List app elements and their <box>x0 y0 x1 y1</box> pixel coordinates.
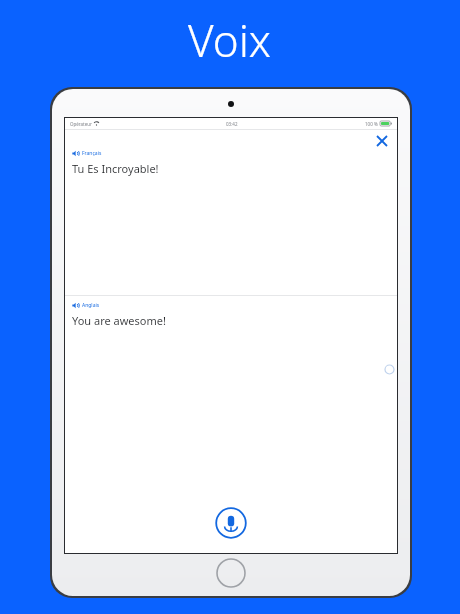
staticText: 03:42 <box>226 121 238 127</box>
staticText: Anglais <box>82 302 100 309</box>
staticText: Opérateur <box>70 121 92 127</box>
staticText: Voix <box>188 10 272 70</box>
button[interactable]: Close <box>65 130 397 295</box>
button[interactable]: Microphone <box>215 507 247 539</box>
button[interactable]: Home <box>216 558 246 588</box>
button[interactable]: Anglais <box>65 296 397 553</box>
staticText: You are awesome! <box>72 313 166 328</box>
staticText: Tu Es Incroyable! <box>72 161 159 176</box>
staticText: 100 % <box>365 121 378 127</box>
button[interactable]: Close <box>373 132 391 150</box>
staticText: Français <box>82 150 102 157</box>
button[interactable]: More <box>385 365 394 374</box>
